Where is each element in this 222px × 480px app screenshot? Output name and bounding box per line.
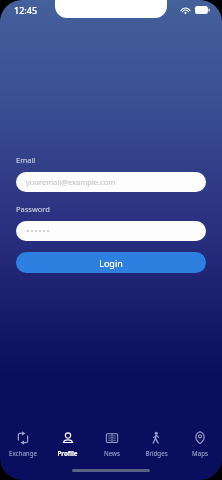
button[interactable] (16, 221, 206, 241)
staticText: Maps (192, 449, 208, 457)
button[interactable]: News (90, 427, 134, 461)
staticText: Bridges (145, 449, 168, 457)
button[interactable]: Login (16, 252, 206, 273)
staticText: youremail@example.com (26, 177, 116, 187)
staticText: Login (99, 257, 123, 269)
button[interactable]: Profile (45, 427, 90, 461)
button[interactable]: Maps (178, 427, 222, 461)
button[interactable]: Exchange (0, 427, 45, 461)
staticText: Password (16, 204, 50, 214)
staticText: News (104, 449, 120, 457)
staticText: Exchange (9, 449, 37, 457)
staticText: Email (16, 155, 36, 165)
button[interactable]: Bridges (134, 427, 178, 461)
staticText: Profile (57, 449, 78, 457)
button[interactable]: youremail@example.com (16, 172, 206, 192)
staticText: 12:45 (14, 4, 38, 16)
